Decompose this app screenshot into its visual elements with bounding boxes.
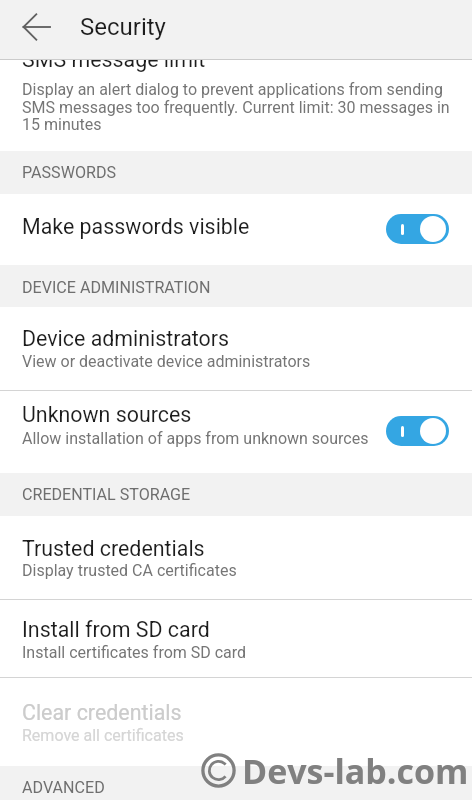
button[interactable]: Navigate up	[0, 0, 56, 56]
button[interactable]: Unknown sources, on	[386, 416, 449, 446]
staticText: Install certificates from SD card	[22, 643, 247, 662]
staticText: Unknown sources	[22, 402, 192, 427]
staticText: Security	[80, 13, 166, 41]
staticText: Trusted credentials	[22, 536, 205, 561]
button[interactable]: Make passwords visible, on	[386, 214, 449, 244]
staticText: SMS message limit	[22, 47, 206, 72]
staticText: SMS messages too frequently. Current lim…	[22, 98, 450, 117]
button[interactable]	[0, 307, 472, 390]
button[interactable]	[0, 516, 472, 599]
button[interactable]	[0, 60, 472, 151]
staticText: Install from SD card	[22, 617, 210, 642]
staticText: Devs-lab.com	[242, 748, 469, 794]
staticText: View or deactivate device administrators	[22, 352, 311, 371]
staticText: CREDENTIAL STORAGE	[22, 485, 191, 504]
staticText: Device administrators	[22, 326, 230, 351]
staticText: Allow installation of apps from unknown …	[22, 429, 369, 448]
button[interactable]	[0, 678, 472, 766]
staticText: ADVANCED	[22, 778, 105, 797]
staticText: Display an alert dialog to prevent appli…	[22, 80, 443, 99]
staticText: Make passwords visible	[22, 214, 250, 239]
button[interactable]	[0, 391, 472, 473]
staticText: PASSWORDS	[22, 163, 117, 182]
button[interactable]	[0, 600, 472, 677]
staticText: 15 minutes	[22, 115, 102, 134]
staticText: DEVICE ADMINISTRATION	[22, 278, 211, 297]
staticText: Remove all certificates	[22, 726, 184, 745]
staticText: Display trusted CA certificates	[22, 561, 237, 580]
button[interactable]	[0, 194, 472, 265]
staticText: Clear credentials	[22, 700, 182, 725]
